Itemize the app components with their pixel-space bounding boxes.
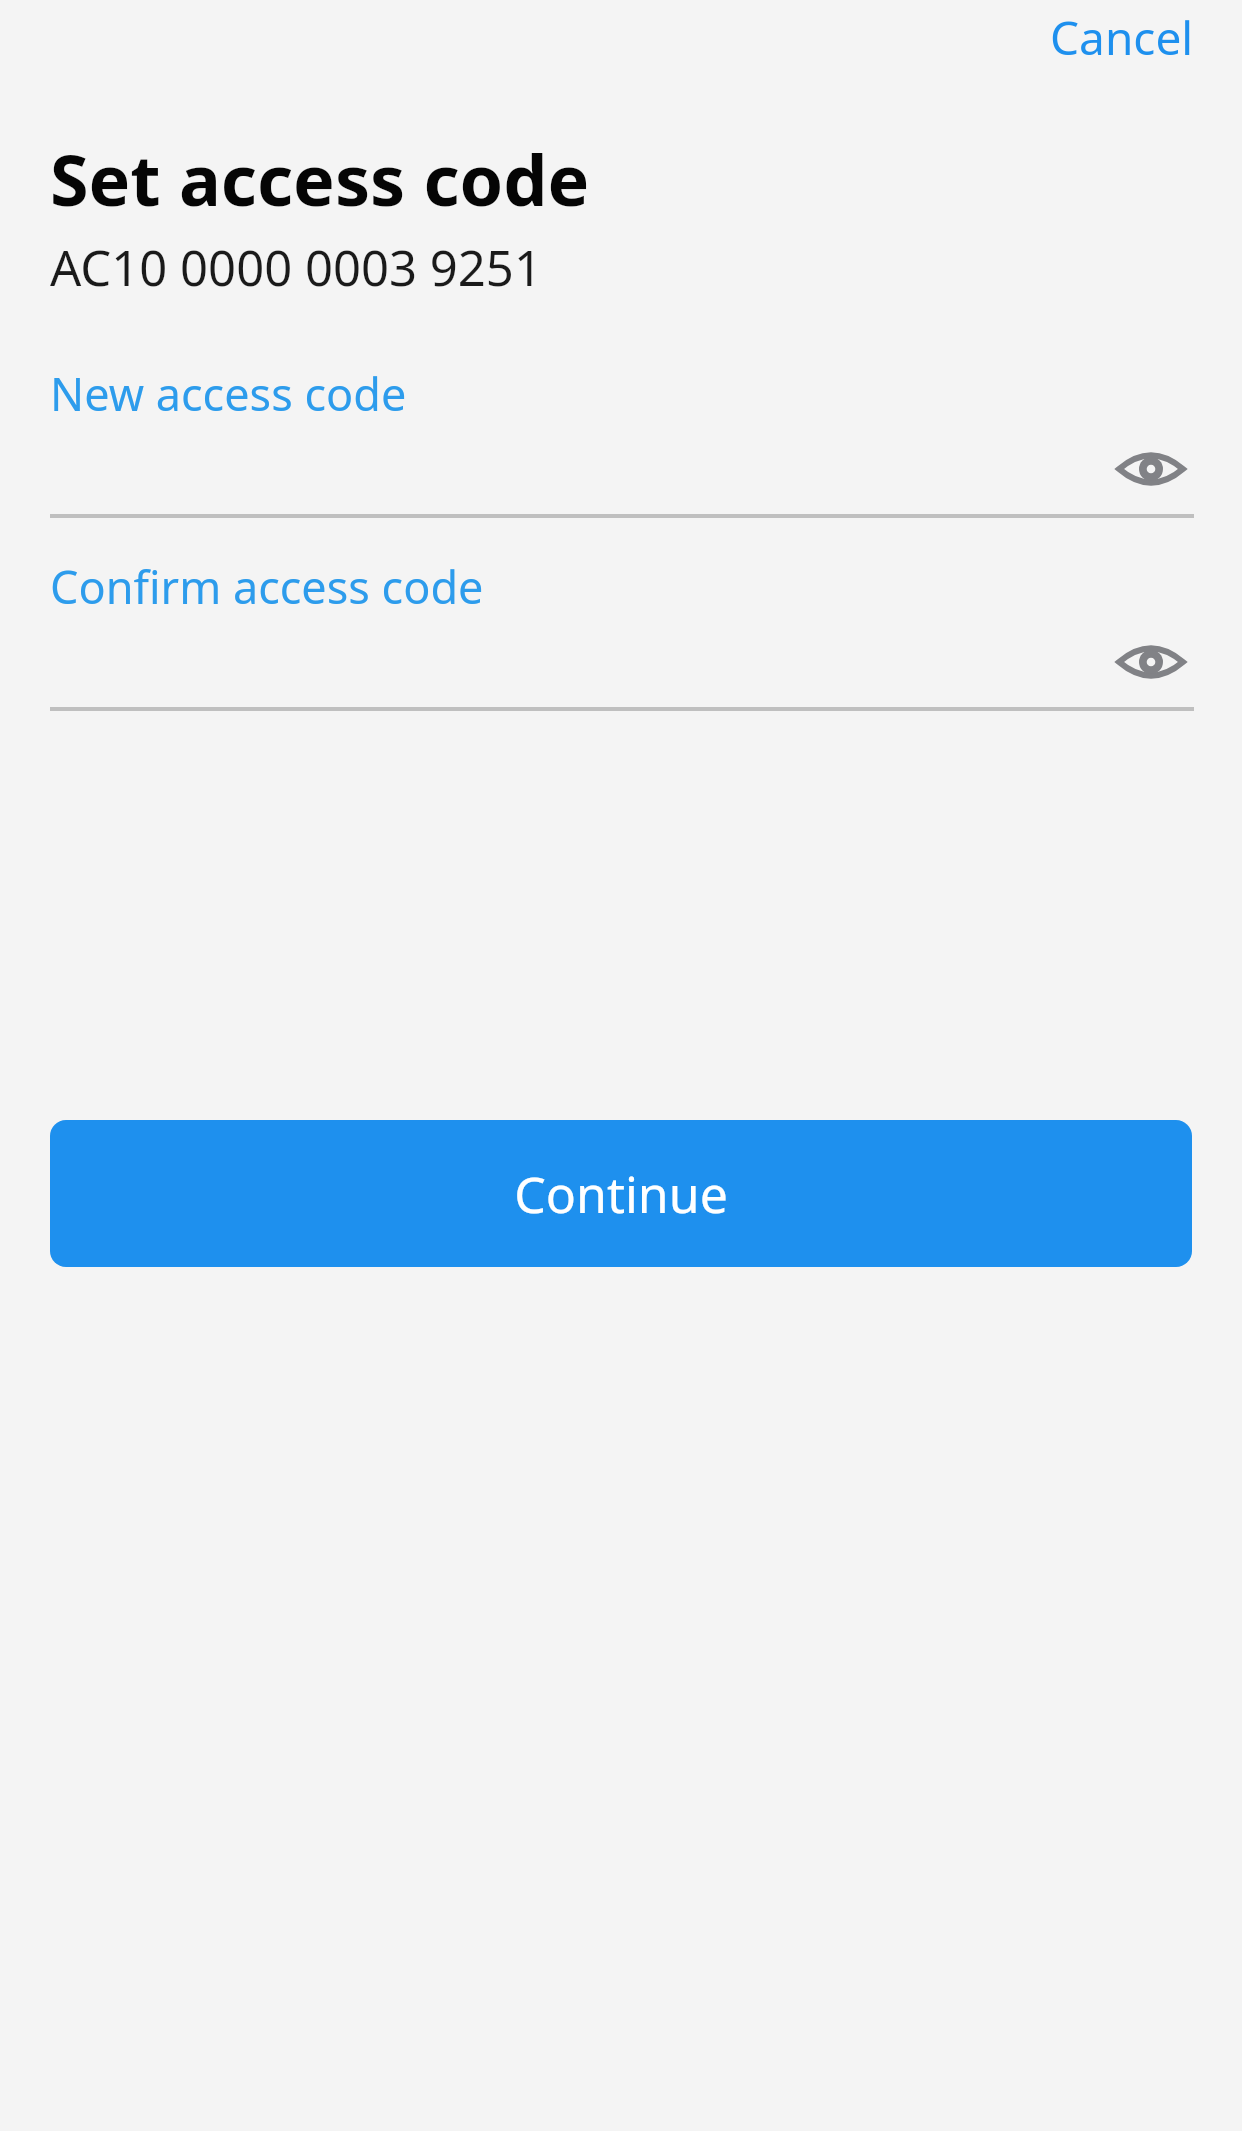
staticText: AC10 0000 0003 9251	[50, 234, 542, 301]
staticText: Set access code	[50, 131, 590, 226]
button[interactable]: Show new access code	[1108, 433, 1194, 505]
staticText: Confirm access code	[50, 556, 484, 617]
staticText: Continue	[514, 1160, 728, 1228]
staticText: New access code	[50, 363, 407, 424]
button[interactable]: Show confirm access code	[1108, 626, 1194, 698]
button[interactable]: Continue	[50, 1120, 1192, 1267]
staticText: Cancel	[1050, 6, 1194, 69]
button[interactable]: Cancel	[1034, 0, 1210, 75]
